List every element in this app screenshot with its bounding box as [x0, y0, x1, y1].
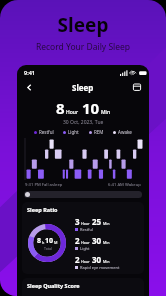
- staticText: REM: [94, 129, 104, 135]
- staticText: 30: [92, 254, 102, 265]
- staticText: Record Your Daily Sleep: [0, 41, 166, 53]
- staticText: Min: [103, 221, 110, 226]
- staticText: 25: [92, 216, 102, 227]
- staticText: Hour: [81, 240, 90, 245]
- staticText: Min: [101, 109, 111, 116]
- staticText: Light: [68, 129, 79, 135]
- staticText: 2: [75, 254, 80, 265]
- staticText: Restful: [80, 227, 93, 232]
- staticText: 30: [92, 235, 102, 246]
- staticText: 8: [37, 236, 42, 246]
- staticText: 3: [75, 216, 80, 227]
- staticText: h: [42, 240, 45, 245]
- staticText: Min: [103, 240, 110, 245]
- staticText: Sleep Ratio: [27, 206, 58, 213]
- staticText: Sleep Quality Score: [27, 282, 80, 289]
- staticText: Hour: [81, 259, 90, 264]
- staticText: Total: [44, 246, 52, 251]
- staticText: 9:31 PM Fall asleep: [25, 182, 63, 188]
- staticText: Sleep: [0, 12, 166, 38]
- staticText: 2: [75, 235, 80, 246]
- staticText: Light: [80, 246, 90, 251]
- staticText: 9:41: [24, 69, 35, 76]
- staticText: Hour: [66, 109, 79, 116]
- staticText: 30 Oct, 2023, Tue: [63, 119, 104, 126]
- staticText: Restful: [39, 129, 54, 135]
- staticText: M: [54, 240, 58, 245]
- staticText: 10: [45, 236, 54, 246]
- staticText: Awake: [118, 129, 132, 135]
- staticText: 10: [82, 98, 100, 118]
- button[interactable]: Back: [23, 81, 35, 93]
- staticText: 6:41 AM Wakeup: [108, 182, 141, 188]
- staticText: Rapid eye movement: [80, 265, 120, 270]
- button[interactable]: Sleep Ratio: [22, 202, 144, 274]
- staticText: Sleep: [72, 82, 94, 93]
- button[interactable]: Calendar: [131, 81, 143, 93]
- staticText: 8: [56, 98, 65, 118]
- button[interactable]: Sleep Quality Score: [22, 278, 144, 296]
- button[interactable]: Time range scrubber: [24, 191, 142, 198]
- staticText: Min: [103, 259, 110, 264]
- staticText: Hour: [81, 221, 90, 226]
